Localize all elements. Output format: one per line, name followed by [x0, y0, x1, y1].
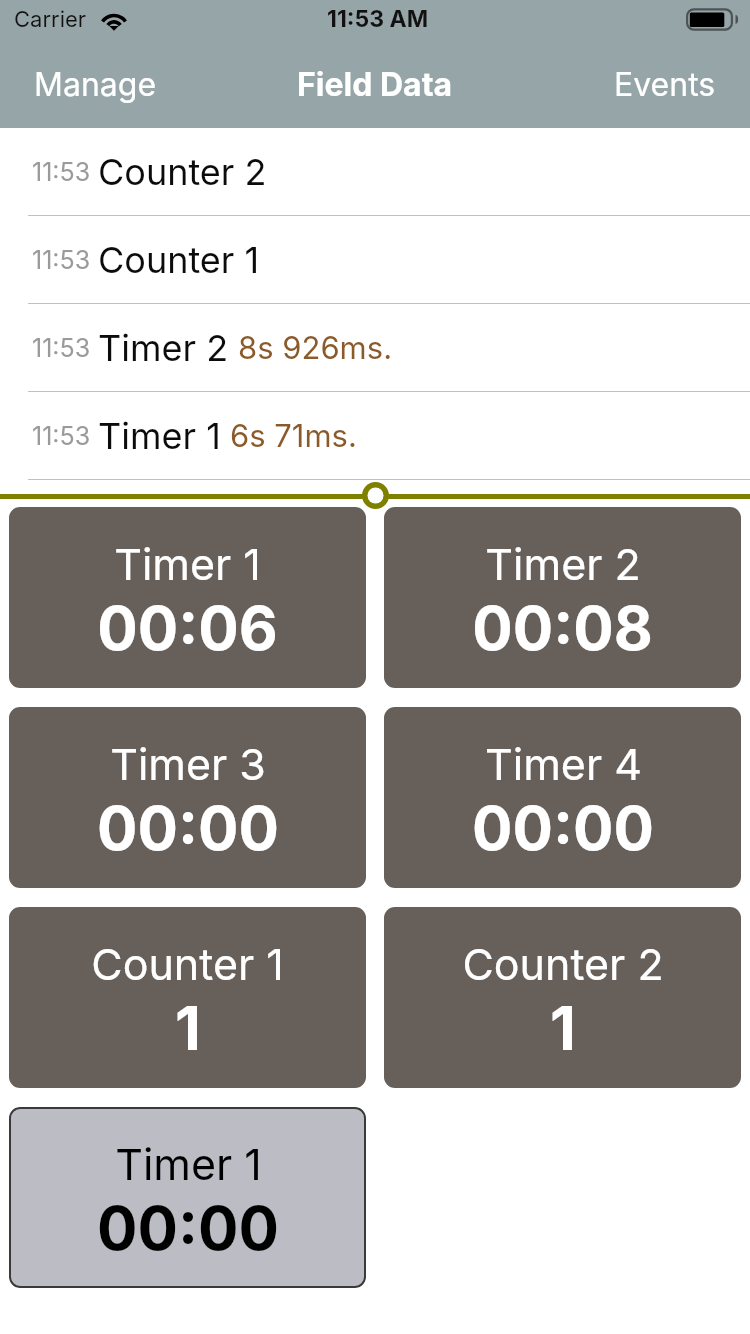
button[interactable]: Counter 2 — [384, 907, 741, 1088]
staticText: 1 — [550, 992, 576, 1065]
button[interactable]: Events — [594, 53, 750, 116]
button[interactable]: 11:53 — [0, 128, 750, 215]
staticText: Timer 4 — [485, 738, 642, 790]
staticText: 11:53 — [32, 333, 91, 363]
button[interactable]: Timer 1 — [9, 1107, 366, 1288]
staticText: Timer 2 — [485, 538, 641, 590]
staticText: 1 — [175, 992, 201, 1065]
staticText: Counter 1 — [91, 938, 284, 990]
staticText: 00:06 — [97, 592, 278, 665]
button[interactable]: Timer 1 — [9, 507, 366, 688]
button[interactable]: Manage — [0, 53, 177, 116]
staticText: 8s 926ms. — [238, 329, 393, 367]
staticText: Timer 1 — [98, 414, 221, 458]
other: Wi-Fi — [98, 9, 130, 31]
staticText: Timer 1 — [114, 538, 261, 590]
button[interactable]: Timer 2 — [384, 507, 741, 688]
button[interactable]: Timer 4 — [384, 707, 741, 888]
staticText: Events — [614, 65, 716, 104]
staticText: 6s 71ms. — [230, 417, 357, 455]
button[interactable]: Counter 1 — [9, 907, 366, 1088]
staticText: Counter 2 — [98, 150, 267, 194]
staticText: 11:53 — [32, 245, 91, 275]
staticText: Timer 2 — [98, 326, 229, 370]
staticText: Field Data — [297, 65, 453, 104]
staticText: Counter 2 — [462, 938, 664, 990]
staticText: 00:00 — [97, 792, 279, 865]
button[interactable]: Drag handle — [361, 482, 390, 509]
staticText: 11:53 — [32, 157, 91, 187]
staticText: 00:08 — [472, 592, 653, 665]
button[interactable]: 11:53 — [0, 304, 750, 391]
staticText: Carrier — [14, 6, 87, 33]
staticText: Timer 3 — [110, 738, 266, 790]
staticText: Counter 1 — [98, 238, 260, 282]
staticText: 11:53 AM — [327, 5, 429, 33]
staticText: Manage — [34, 65, 157, 104]
button[interactable]: 11:53 — [0, 216, 750, 303]
staticText: Timer 1 — [115, 1138, 262, 1190]
staticText: 11:53 — [32, 421, 91, 451]
button[interactable]: Timer 3 — [9, 707, 366, 888]
button[interactable]: 11:53 — [0, 392, 750, 479]
staticText: 00:00 — [97, 1192, 279, 1265]
staticText: 00:00 — [472, 792, 654, 865]
other: Battery — [686, 8, 739, 31]
